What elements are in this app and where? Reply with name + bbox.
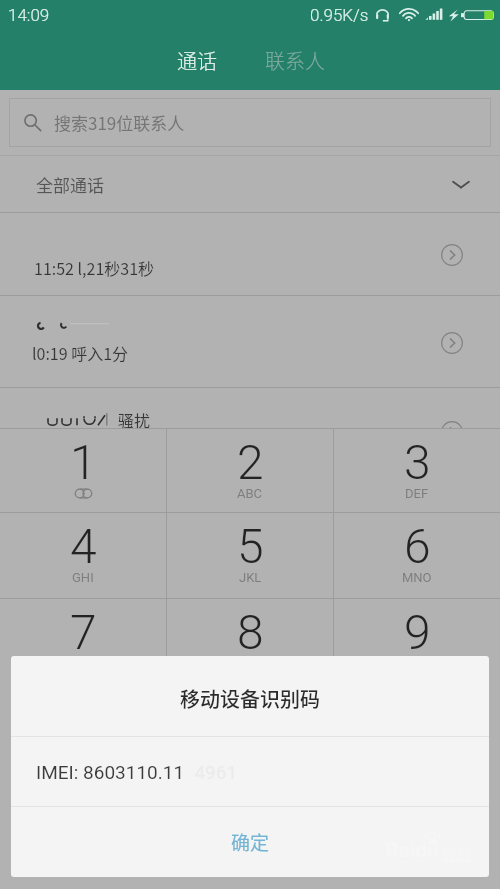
button[interactable]: 搜索319位联系人 [9,98,491,147]
staticText: 11:52 l,21秒31秒 [34,256,155,279]
staticText: 14:09 [8,5,50,25]
button[interactable]: 4 [0,513,166,598]
staticText: 通话 [177,46,217,75]
staticText: 搜索319位联系人 [54,110,185,135]
staticText: 2 [237,434,264,490]
staticText: 4 [70,518,97,574]
button[interactable]: 2 [167,429,333,512]
staticText: 3 [404,434,431,490]
button[interactable]: Call details [439,330,465,356]
staticText: ABC [237,486,263,501]
button[interactable]: 9 [334,599,500,685]
staticText: 全部通话 [36,172,104,197]
other: Signal strength [425,7,444,23]
button[interactable]: Call details [439,419,465,428]
staticText: DEF [405,486,429,501]
other: Headset [374,7,391,23]
staticText: 联系人 [265,46,325,75]
button[interactable]: 1 [0,429,166,512]
staticText: 7 [70,604,97,660]
staticText: 骚扰 [118,408,151,428]
button[interactable]: Call details [439,242,465,268]
staticText: 4961 [185,761,238,783]
staticText: MNO [402,570,432,585]
button[interactable]: 7 [0,599,166,685]
button[interactable] [0,213,500,295]
button[interactable]: 6 [334,513,500,598]
button[interactable]: 5 [167,513,333,598]
staticText: GHI [72,570,94,585]
staticText: 确定 [231,828,270,856]
staticText: 5 [237,518,264,574]
staticText: 0.95K/s [310,5,369,25]
staticText: l0:19 呼入1分 [32,341,129,364]
button[interactable] [0,296,500,387]
button[interactable]: 确定 [11,807,489,877]
button[interactable]: 通话 [152,30,242,90]
staticText: 9 [404,604,431,660]
button[interactable] [0,388,500,428]
button[interactable]: 3 [334,429,500,512]
staticText: IMEI: 8603110.11 [36,761,185,783]
staticText: 6 [404,518,431,574]
button[interactable]: 全部通话 [0,156,500,212]
other: Battery charging [461,7,494,23]
staticText: 移动设备识别码 [180,684,320,713]
other: Wi-Fi [398,7,420,23]
staticText: 8 [237,604,264,660]
staticText: JKL [239,570,262,585]
staticText: | [105,410,109,428]
button[interactable]: 联系人 [250,30,340,90]
button[interactable]: 8 [167,599,333,685]
staticText: 1 [70,434,97,490]
